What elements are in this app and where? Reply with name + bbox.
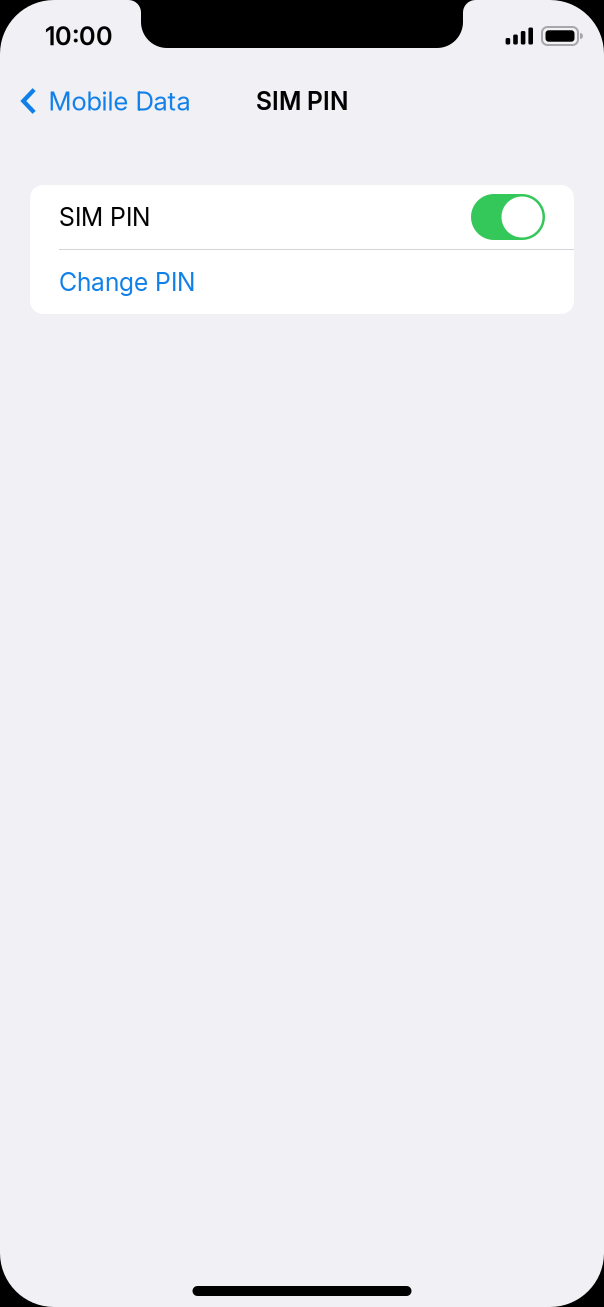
staticText: SIM PIN: [256, 86, 348, 116]
button[interactable]: Mobile Data: [0, 77, 200, 125]
button[interactable]: SIM PIN: [471, 194, 545, 240]
staticText: Change PIN: [59, 267, 195, 297]
staticText: Mobile Data: [48, 85, 190, 117]
staticText: 10:00: [45, 21, 113, 51]
button[interactable]: Change PIN: [30, 250, 574, 314]
staticText: SIM PIN: [59, 202, 150, 232]
